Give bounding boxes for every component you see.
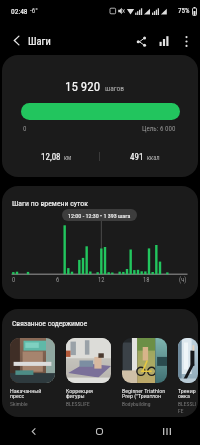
- staticText: Bodybuilding: [122, 401, 151, 408]
- staticText: 12,08: [41, 152, 61, 163]
- staticText: BLESSLIFE: [66, 401, 90, 408]
- staticText: 12:00 - 12:30 • 1 393 шага: [68, 212, 131, 219]
- staticText: ккал: [147, 154, 160, 162]
- button[interactable]: Back: [0, 417, 66, 445]
- staticText: Шаги: [28, 35, 51, 47]
- button[interactable]: More options: [178, 33, 194, 49]
- button[interactable]: Recent apps: [133, 417, 200, 445]
- staticText: км: [64, 154, 72, 162]
- staticText: Коррекция фигуры: [66, 387, 111, 400]
- staticText: Beginner Triathlon Prep ("Триатлон д…: [122, 387, 167, 400]
- staticText: 75%: [178, 7, 190, 15]
- staticText: Накачанный пресс с 6 кубиками: [10, 387, 55, 400]
- staticText: 491: [130, 152, 144, 163]
- staticText: 6: [56, 276, 60, 284]
- button[interactable]: Home: [66, 417, 133, 445]
- staticText: (ч): [179, 276, 187, 284]
- button[interactable]: Back: [7, 31, 26, 50]
- button[interactable]: Накачанный пресс с 6 кубиками: [10, 338, 55, 408]
- staticText: 02:48: [11, 7, 28, 16]
- staticText: 0: [12, 276, 16, 284]
- staticText: BLESSLIFE: [178, 401, 198, 415]
- button[interactable]: Statistics: [155, 32, 173, 50]
- staticText: Шаги по времени суток: [12, 199, 88, 208]
- staticText: шагов: [105, 84, 125, 93]
- button[interactable]: Beginner Triathlon Prep ("Триатлон д…: [122, 338, 167, 408]
- staticText: Тренировка для получ…: [178, 387, 198, 400]
- button[interactable]: Share: [132, 32, 150, 50]
- staticText: 18: [143, 276, 150, 284]
- staticText: -6°: [30, 7, 38, 15]
- button[interactable]: Тренировка для получ…: [178, 338, 198, 415]
- staticText: Цель: 6 000: [142, 125, 176, 133]
- staticText: 12: [98, 276, 105, 284]
- staticText: Связанное содержимое: [12, 319, 88, 328]
- button[interactable]: Коррекция фигуры: [66, 338, 111, 408]
- staticText: Skimble: [10, 401, 28, 408]
- staticText: 0: [23, 125, 27, 133]
- staticText: 15 920: [65, 79, 101, 94]
